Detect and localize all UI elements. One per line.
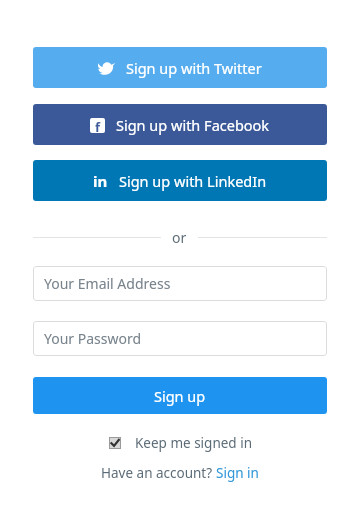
staticText: or bbox=[172, 228, 187, 246]
staticText: Your Email Address bbox=[44, 274, 171, 293]
button[interactable]: in bbox=[33, 160, 327, 201]
staticText: Your Password bbox=[44, 329, 142, 348]
button[interactable]: Your Email Address bbox=[33, 266, 327, 301]
staticText: in bbox=[93, 171, 108, 191]
button[interactable]: Sign in bbox=[216, 464, 259, 482]
staticText: Sign up with Twitter bbox=[126, 58, 262, 78]
button[interactable]: Sign up bbox=[33, 377, 327, 414]
staticText: Sign up with LinkedIn bbox=[119, 171, 267, 191]
staticText: f bbox=[95, 118, 101, 133]
button[interactable]: f bbox=[33, 104, 327, 145]
button[interactable]: Your Password bbox=[33, 321, 327, 356]
staticText: Keep me signed in bbox=[135, 434, 252, 452]
staticText: Sign up bbox=[154, 386, 206, 406]
button[interactable]: Keep me signed in bbox=[109, 434, 252, 452]
staticText: Sign up with Facebook bbox=[116, 115, 270, 135]
button[interactable]: Sign up with Twitter bbox=[33, 47, 327, 88]
staticText: Have an account? bbox=[101, 464, 216, 482]
